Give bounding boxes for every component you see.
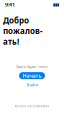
button[interactable]: Начать: [19, 72, 45, 79]
staticText: ▮▮▮: [53, 2, 59, 7]
staticText: 9:41: [5, 1, 15, 8]
staticText: Условия использования: [14, 104, 49, 108]
staticText: Войти: [26, 82, 37, 87]
button[interactable]: Войти: [26, 82, 37, 87]
staticText: Начать: [22, 72, 41, 79]
staticText: Добро пожаловать!: [3, 15, 43, 47]
staticText: Здесь будет текст: [16, 64, 48, 69]
